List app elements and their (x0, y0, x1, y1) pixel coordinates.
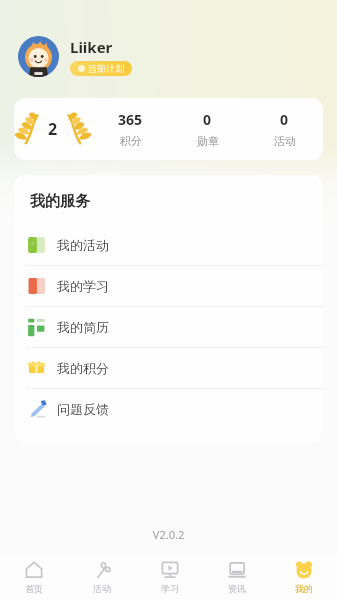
staticText: 我的 (295, 583, 313, 594)
staticText: 365 (118, 110, 143, 129)
button[interactable]: 我的 (270, 554, 337, 600)
button[interactable]: 0 (246, 98, 323, 160)
staticText: 我的简历 (57, 319, 109, 335)
staticText: 活动 (274, 134, 296, 148)
button[interactable]: 我的简历 (14, 307, 323, 348)
staticText: V2.0.2 (0, 527, 337, 542)
button[interactable]: 0 (169, 98, 246, 160)
button[interactable]: 首页 (0, 554, 68, 600)
button[interactable]: Liiker (18, 36, 337, 77)
staticText: Liiker (70, 37, 113, 57)
button[interactable]: 我的积分 (14, 348, 323, 389)
button[interactable]: 学习 (136, 554, 203, 600)
staticText: 0 (203, 110, 212, 129)
staticText: 我的学习 (57, 278, 109, 294)
staticText: 我的积分 (57, 360, 109, 376)
button[interactable]: 问题反馈 (14, 389, 323, 429)
staticText: 2 (48, 118, 58, 140)
staticText: 活动 (93, 583, 111, 594)
button[interactable]: 2 (14, 98, 92, 160)
staticText: 积分 (120, 134, 142, 148)
staticText: 学习 (161, 583, 179, 594)
button[interactable]: 活动 (68, 554, 136, 600)
staticText: 我的服务 (30, 192, 90, 211)
staticText: 资讯 (228, 583, 246, 594)
button[interactable]: 我的活动 (14, 225, 323, 266)
staticText: 我的活动 (57, 237, 109, 253)
button[interactable]: 我的学习 (14, 266, 323, 307)
button[interactable]: 365 (92, 98, 169, 160)
staticText: 问题反馈 (57, 401, 109, 417)
staticText: 西部计划 (88, 63, 124, 74)
staticText: 0 (280, 110, 289, 129)
button[interactable]: 西部计划 (70, 61, 132, 76)
staticText: 首页 (25, 583, 43, 594)
staticText: 勋章 (197, 134, 219, 148)
button[interactable]: 资讯 (203, 554, 270, 600)
